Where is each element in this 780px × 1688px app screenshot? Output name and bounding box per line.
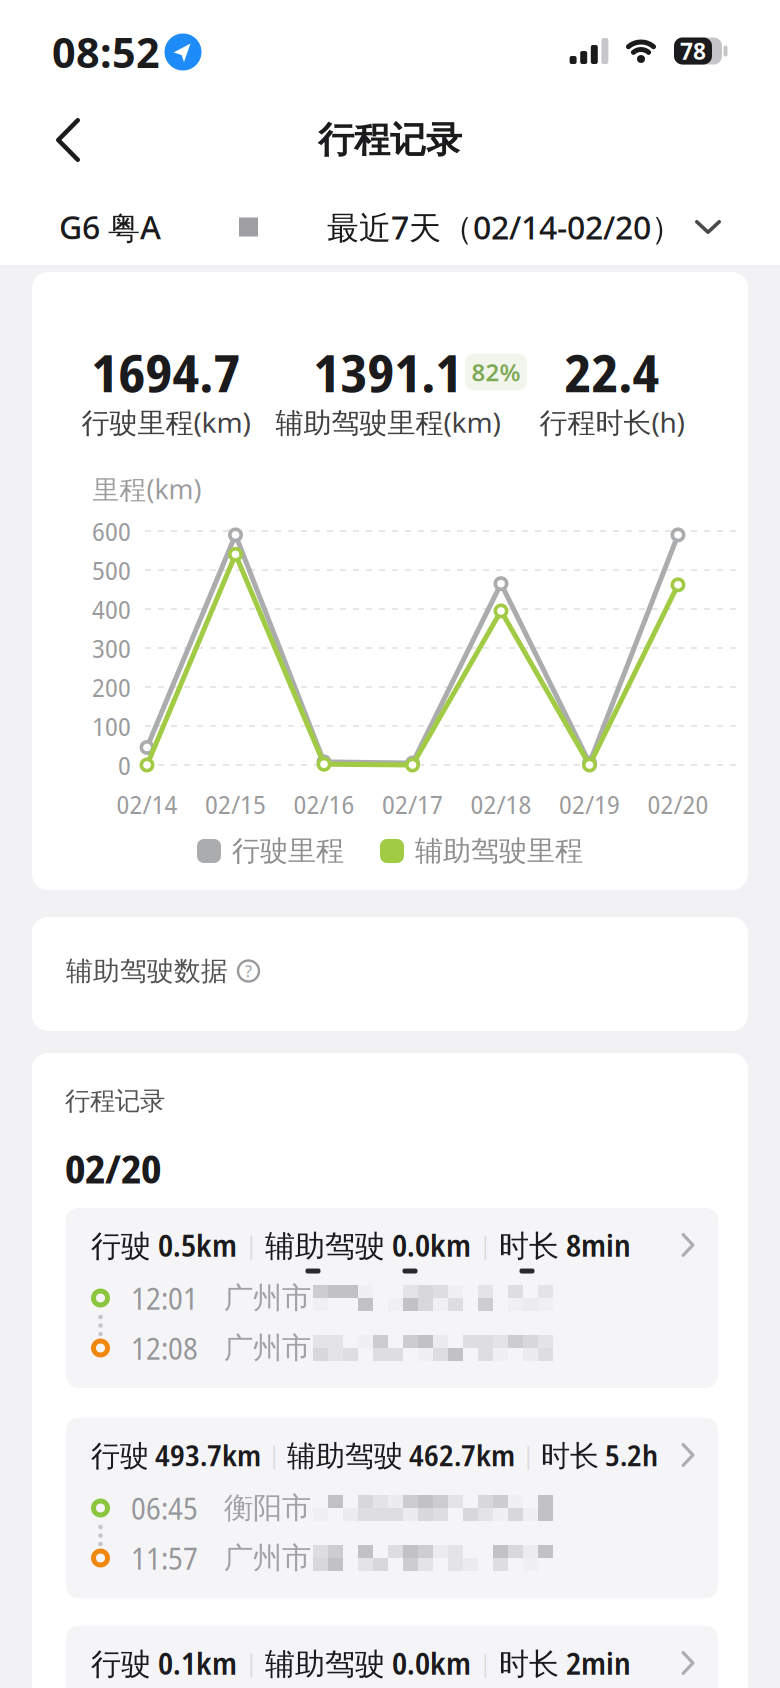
staticText: 0 (118, 748, 131, 782)
staticText: 时长 5.2h (541, 1436, 658, 1474)
staticText: 广州市 (224, 1330, 311, 1366)
staticText: 广州市 (224, 1280, 311, 1316)
staticText: 600 (92, 514, 131, 548)
button[interactable]: 最近7天（02/14-02/20） (327, 206, 721, 248)
staticText: 11:57 (131, 1538, 198, 1578)
staticText: 02/19 (559, 787, 620, 821)
staticText: 12:08 (131, 1328, 198, 1368)
staticText: 行程记录 (318, 118, 462, 162)
staticText: 辅助驾驶数据 (66, 955, 228, 987)
staticText: 02/15 (205, 787, 266, 821)
staticText: 12:01 (131, 1278, 198, 1318)
staticText: 02/17 (382, 787, 443, 821)
staticText: 02/16 (293, 787, 354, 821)
staticText: 22.4 (564, 337, 659, 407)
staticText: 1694.7 (91, 337, 240, 407)
button[interactable]: G6 粤A (59, 206, 258, 248)
staticText: 行驶 0.5km (91, 1225, 237, 1265)
staticText: 82% (471, 356, 520, 388)
staticText: 02/18 (470, 787, 531, 821)
staticText: 08:52 (52, 25, 160, 79)
staticText: G6 粤A (59, 206, 161, 248)
staticText: 1391.1 (313, 337, 462, 407)
staticText: 行驶 0.1km (91, 1643, 237, 1683)
staticText: 200 (92, 670, 131, 704)
staticText: 最近7天（02/14-02/20） (327, 206, 683, 248)
button[interactable]: 行驶 0.5km (66, 1208, 718, 1388)
button[interactable]: 辅助驾驶数据 (32, 917, 748, 1031)
staticText: 500 (92, 553, 131, 587)
staticText: 02/20 (65, 1141, 161, 1194)
staticText: 辅助驾驶里程 (415, 834, 583, 868)
staticText: 100 (92, 709, 131, 743)
staticText: 时长 8min (499, 1225, 631, 1265)
staticText: 300 (92, 631, 131, 665)
staticText: 02/20 (647, 787, 708, 821)
staticText: 里程(km) (92, 471, 201, 507)
staticText: 02/14 (116, 787, 177, 821)
button[interactable]: Back (38, 110, 98, 170)
staticText: 行驶里程(km) (81, 403, 250, 441)
staticText: 时长 2min (499, 1643, 631, 1683)
staticText: | (522, 1440, 534, 1470)
staticText: 广州市 (224, 1540, 311, 1576)
staticText: | (245, 1230, 257, 1260)
staticText: 辅助驾驶 462.7km (287, 1436, 515, 1474)
staticText: 06:45 (131, 1488, 198, 1528)
staticText: 行程记录 (65, 1085, 165, 1116)
staticText: 400 (92, 592, 131, 626)
staticText: ? (245, 960, 252, 982)
staticText: 行驶里程 (232, 834, 344, 868)
staticText: 78 (680, 36, 706, 66)
staticText: 行程时长(h) (539, 403, 684, 441)
staticText: 辅助驾驶 0.0km (265, 1643, 471, 1683)
staticText: | (245, 1648, 257, 1678)
staticText: 衡阳市 (224, 1490, 311, 1526)
staticText: 辅助驾驶 0.0km (265, 1225, 471, 1265)
button[interactable]: 行驶 0.1km (66, 1626, 718, 1688)
staticText: | (268, 1440, 280, 1470)
staticText: 行驶 493.7km (91, 1436, 261, 1474)
staticText: | (479, 1648, 491, 1678)
staticText: | (479, 1230, 491, 1260)
button[interactable]: 行驶 493.7km (66, 1418, 718, 1598)
staticText: 辅助驾驶里程(km) (275, 403, 500, 441)
